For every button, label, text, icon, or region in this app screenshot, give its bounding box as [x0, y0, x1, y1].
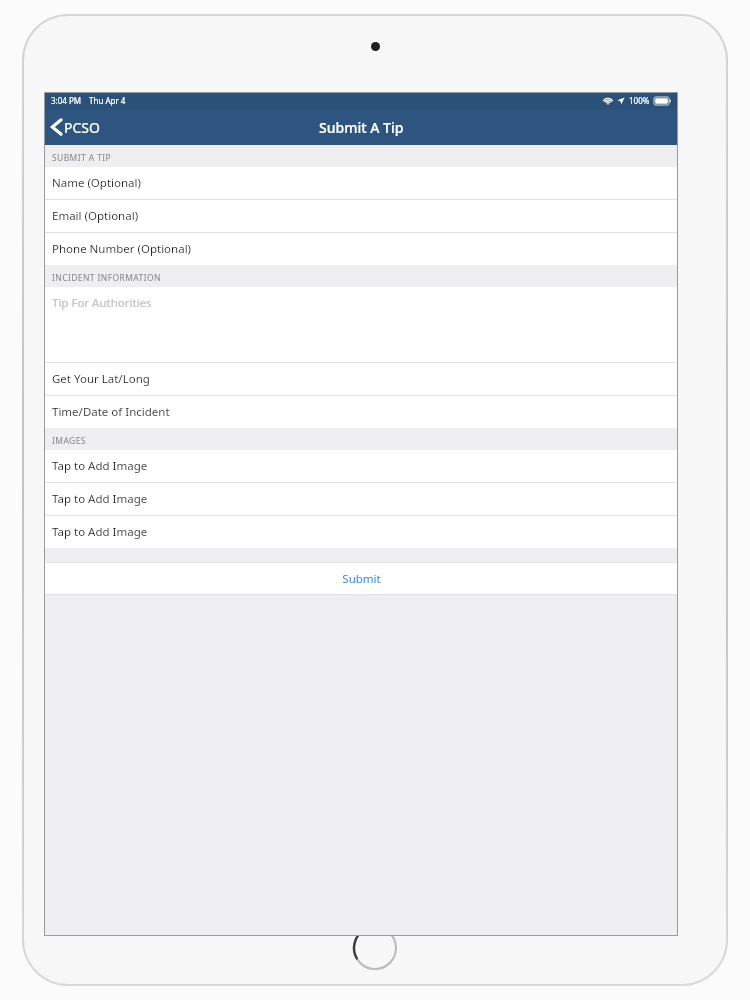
button[interactable]: PCSO — [44, 109, 110, 145]
button[interactable]: Email (Optional) — [44, 200, 678, 232]
staticText: Tap to Add Image — [52, 491, 148, 507]
button[interactable]: Phone Number (Optional) — [44, 233, 678, 265]
staticText: Tip For Authorities — [52, 295, 152, 311]
staticText: PCSO — [64, 118, 100, 137]
staticText: Submit — [342, 571, 381, 587]
button[interactable]: Tap to Add Image — [44, 516, 678, 548]
staticText: Name (Optional) — [52, 175, 141, 191]
staticText: IMAGES — [52, 435, 86, 447]
button[interactable]: Tap to Add Image — [44, 450, 678, 482]
staticText: Tap to Add Image — [52, 458, 148, 474]
button[interactable]: Get Your Lat/Long — [44, 363, 678, 395]
button[interactable]: Tip For Authorities — [44, 287, 678, 362]
staticText: Get Your Lat/Long — [52, 371, 150, 387]
button[interactable]: Tap to Add Image — [44, 483, 678, 515]
button[interactable]: Name (Optional) — [44, 167, 678, 199]
staticText: Time/Date of Incident — [52, 404, 170, 420]
staticText: Email (Optional) — [52, 208, 139, 224]
staticText: Submit A Tip — [319, 118, 404, 137]
staticText: INCIDENT INFORMATION — [52, 272, 161, 284]
button[interactable]: Submit — [44, 563, 678, 594]
staticText: Thu Apr 4 — [89, 95, 126, 106]
button[interactable]: Time/Date of Incident — [44, 396, 678, 428]
staticText: Phone Number (Optional) — [52, 241, 192, 257]
staticText: 3:04 PM — [51, 95, 82, 106]
staticText: Tap to Add Image — [52, 524, 148, 540]
staticText: 100% — [629, 95, 650, 106]
staticText: SUBMIT A TIP — [52, 152, 112, 164]
